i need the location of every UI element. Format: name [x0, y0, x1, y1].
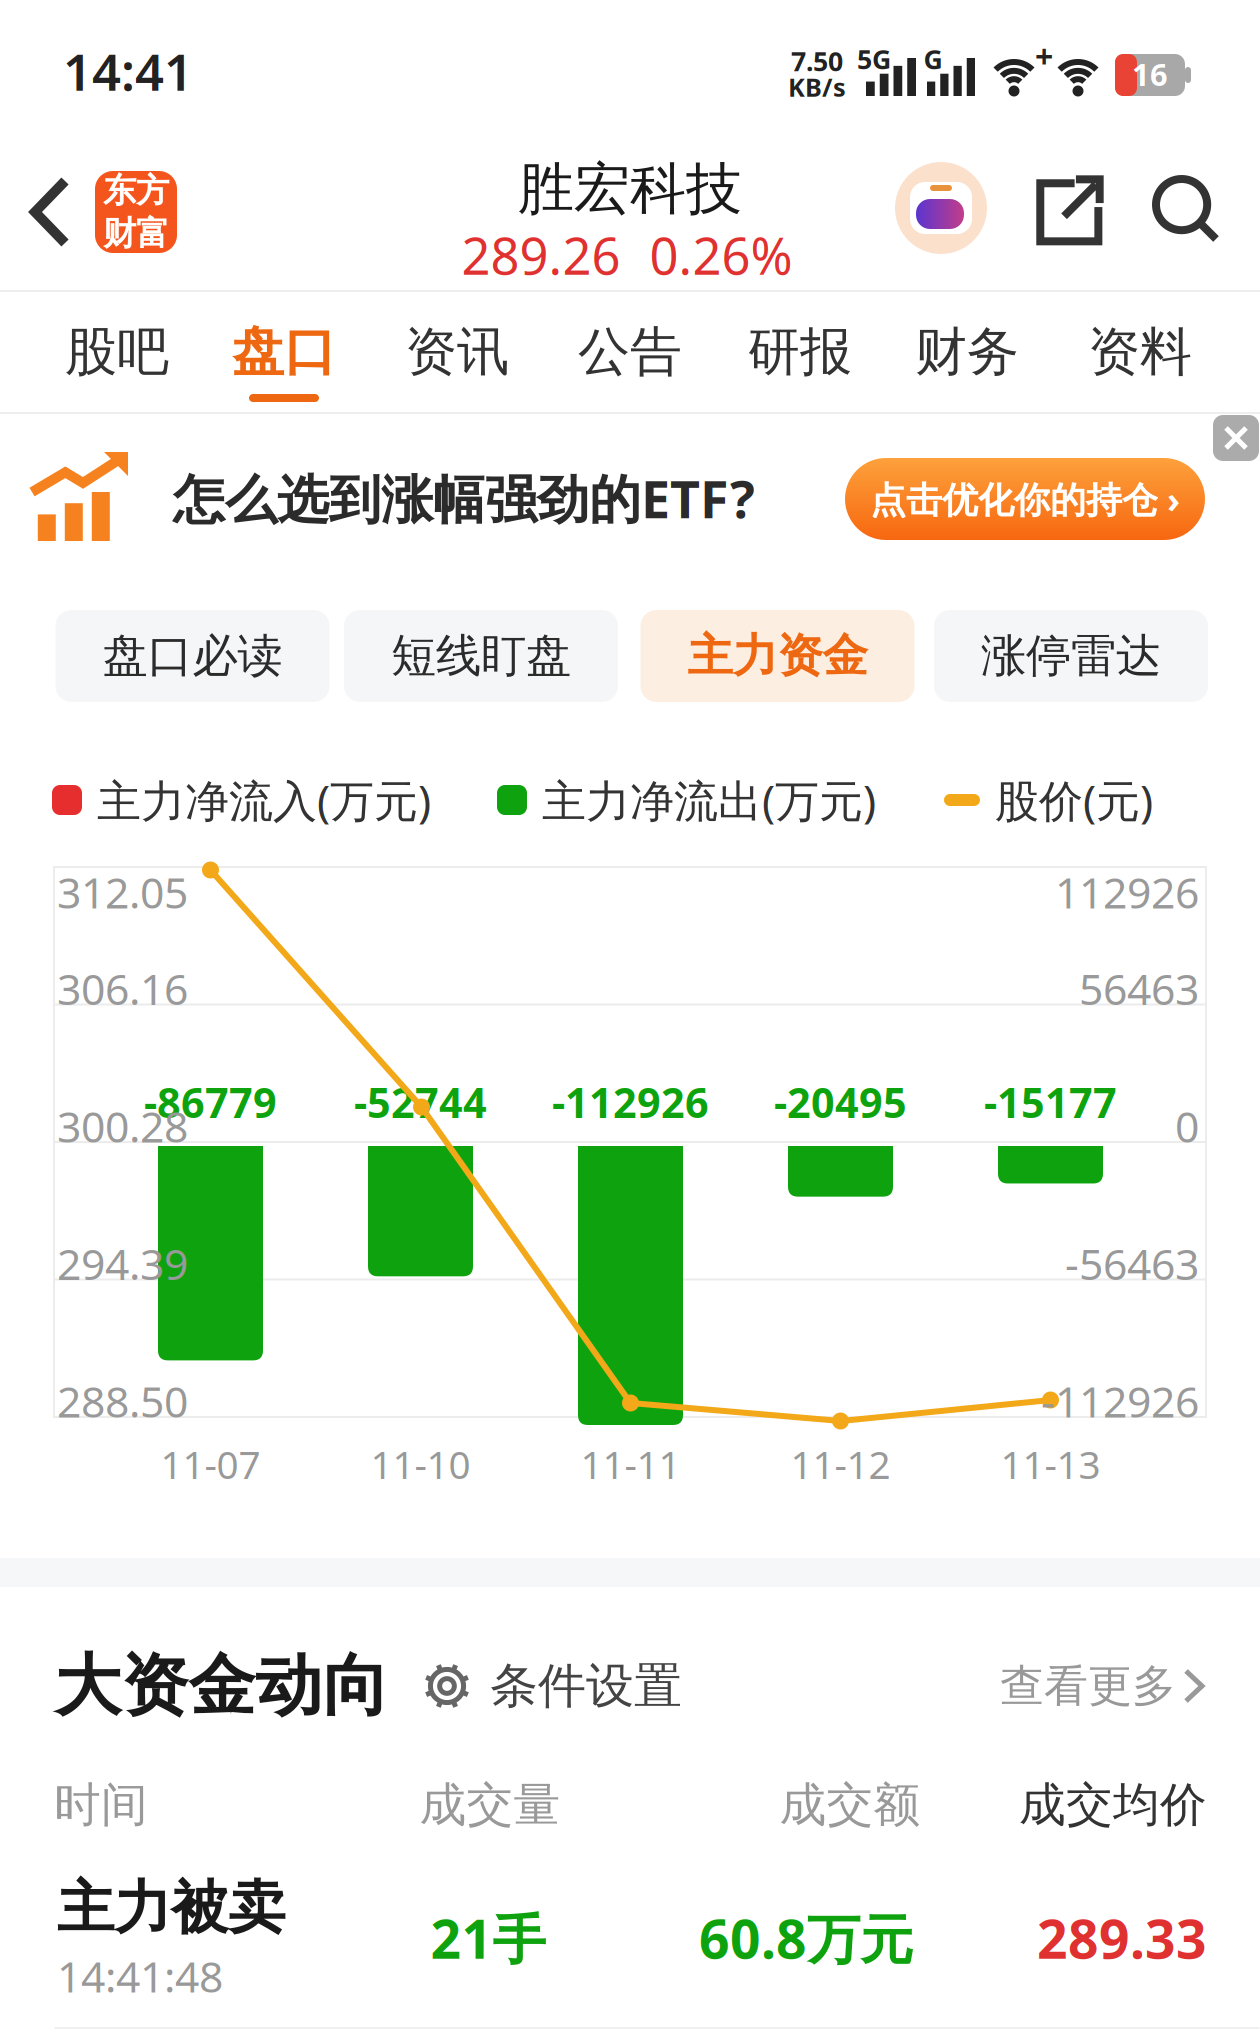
- staticText: 112926: [1055, 864, 1199, 920]
- staticText: 0: [1175, 1098, 1199, 1154]
- button[interactable]: 涨停雷达: [934, 610, 1208, 702]
- staticText: 306.16: [57, 960, 188, 1017]
- staticText: -86779: [144, 1075, 277, 1129]
- staticText: +: [1035, 35, 1053, 77]
- button[interactable]: [895, 162, 987, 254]
- staticText: 资料: [1088, 320, 1192, 384]
- staticText: 盘口: [232, 320, 336, 384]
- staticText: KB/s: [788, 70, 846, 104]
- staticText: 公告: [578, 320, 682, 384]
- button[interactable]: 主力被卖: [0, 1875, 1260, 2025]
- staticText: 11-12: [790, 1438, 890, 1490]
- staticText: 主力被卖: [57, 1873, 285, 1943]
- staticText: 11-07: [160, 1438, 260, 1490]
- staticText: 成交额: [779, 1776, 920, 1834]
- button[interactable]: 财务: [915, 320, 1019, 384]
- button[interactable]: 资讯: [405, 320, 509, 384]
- staticText: 11-10: [370, 1438, 470, 1490]
- staticText: 14:41: [63, 37, 193, 105]
- staticText: 短线盯盘: [391, 628, 571, 684]
- staticText: 289.26: [461, 221, 620, 289]
- staticText: 60.8万元: [699, 1903, 913, 1973]
- staticText: 主力净流出(万元): [542, 771, 876, 829]
- staticText: 涨停雷达: [981, 628, 1161, 684]
- staticText: 东方: [103, 170, 169, 211]
- staticText: 300.28: [57, 1098, 188, 1154]
- staticText: 时间: [54, 1776, 148, 1834]
- button[interactable]: 股吧: [65, 320, 169, 384]
- staticText: 0.26%: [649, 221, 792, 289]
- staticText: -15177: [984, 1075, 1117, 1129]
- staticText: 股吧: [65, 320, 169, 384]
- staticText: 财富: [103, 213, 169, 254]
- staticText: 条件设置: [490, 1656, 682, 1715]
- staticText: 盘口必读: [102, 628, 282, 684]
- button[interactable]: 主力资金: [640, 610, 914, 702]
- staticText: -112926: [552, 1075, 709, 1129]
- button[interactable]: [1035, 178, 1101, 244]
- button[interactable]: 盘口必读: [55, 610, 329, 702]
- staticText: 大资金动向: [54, 1645, 389, 1727]
- staticText: 7.50: [791, 43, 843, 79]
- staticText: 16: [1132, 54, 1168, 94]
- staticText: 成交均价: [1019, 1776, 1207, 1834]
- staticText: 资讯: [405, 320, 509, 384]
- staticText: 5G: [857, 41, 891, 77]
- button[interactable]: 条件设置: [424, 1656, 682, 1715]
- staticText: 56463: [1079, 960, 1199, 1017]
- staticText: -52744: [354, 1075, 487, 1129]
- button[interactable]: 查看更多: [1000, 1659, 1202, 1713]
- staticText: 312.05: [57, 864, 188, 920]
- staticText: 21手: [430, 1903, 545, 1973]
- button[interactable]: [35, 181, 65, 243]
- staticText: 成交量: [419, 1776, 560, 1834]
- button[interactable]: 短线盯盘: [344, 610, 618, 702]
- staticText: -20495: [774, 1075, 907, 1129]
- staticText: 294.39: [57, 1235, 188, 1292]
- staticText: 点击优化你的持仓 ›: [870, 475, 1180, 523]
- staticText: 主力资金: [687, 628, 867, 684]
- button[interactable]: 东方: [95, 171, 177, 253]
- staticText: G: [923, 41, 942, 77]
- button[interactable]: 盘口: [232, 320, 336, 384]
- staticText: 研报: [748, 320, 852, 384]
- button[interactable]: 研报: [748, 320, 852, 384]
- staticText: 查看更多: [1000, 1659, 1176, 1713]
- button[interactable]: [1154, 177, 1218, 241]
- staticText: 股价(元): [995, 771, 1153, 829]
- staticText: -112926: [1041, 1373, 1199, 1429]
- button[interactable]: [1213, 415, 1259, 461]
- staticText: 11-13: [1000, 1438, 1100, 1490]
- button[interactable]: 公告: [578, 320, 682, 384]
- button[interactable]: 点击优化你的持仓 ›: [845, 458, 1205, 540]
- staticText: 财务: [915, 320, 1019, 384]
- staticText: 怎么选到涨幅强劲的ETF?: [173, 463, 755, 533]
- staticText: 主力净流入(万元): [97, 771, 431, 829]
- staticText: 11-11: [580, 1438, 680, 1490]
- staticText: 289.33: [1037, 1903, 1207, 1973]
- staticText: 胜宏科技: [518, 155, 742, 223]
- staticText: -56463: [1065, 1235, 1199, 1292]
- button[interactable]: 资料: [1088, 320, 1192, 384]
- staticText: 14:41:48: [57, 1948, 223, 2004]
- staticText: 288.50: [57, 1373, 188, 1429]
